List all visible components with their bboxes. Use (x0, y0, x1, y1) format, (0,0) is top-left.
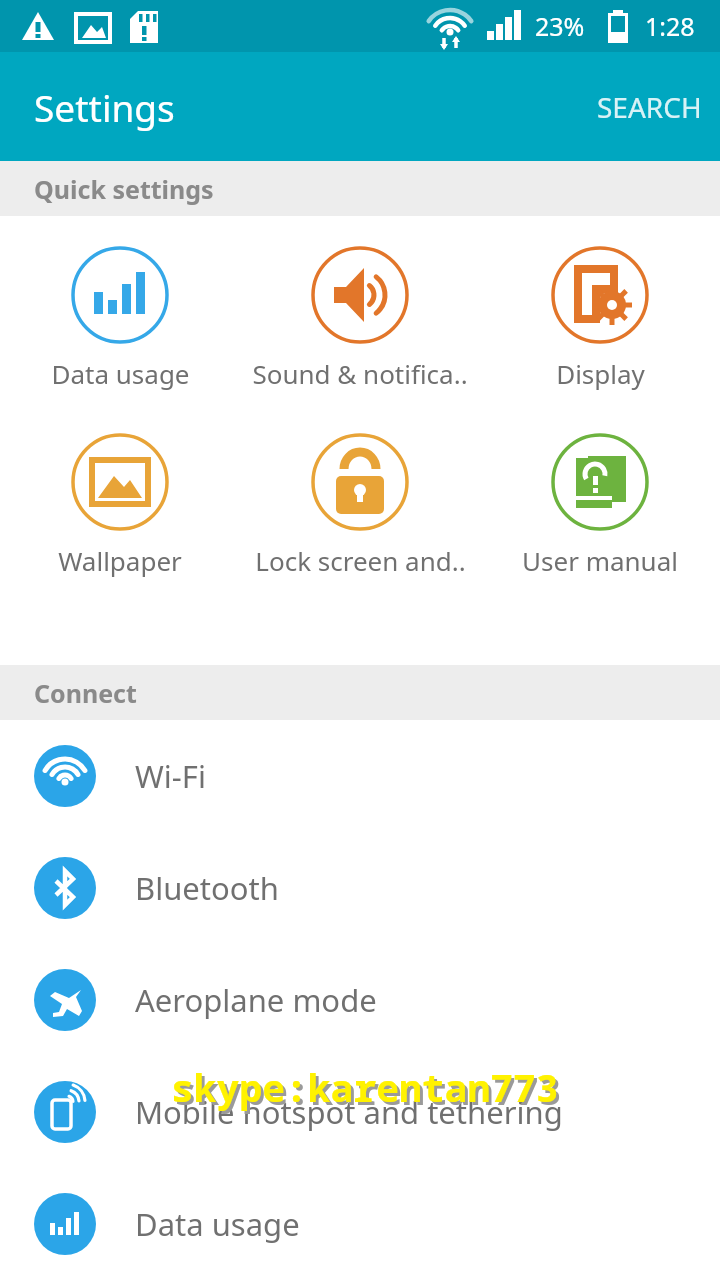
staticText: Display (556, 356, 645, 391)
other: Bluetooth (34, 857, 96, 919)
button[interactable]: Display (480, 246, 720, 391)
button[interactable]: Bluetooth (0, 832, 720, 944)
button[interactable]: Lock screen and.. (240, 433, 480, 578)
staticText: Data usage (135, 1203, 300, 1245)
button[interactable]: Wi-Fi (0, 720, 720, 832)
other: Mobile hotspot and tethering (34, 1081, 96, 1143)
button[interactable]: Aeroplane mode (0, 944, 720, 1056)
staticText: SEARCH (597, 88, 702, 126)
button[interactable]: Sound & notifica.. (240, 246, 480, 391)
staticText: 23% (535, 9, 585, 43)
staticText: Settings (34, 82, 175, 132)
other: Data usage (34, 1193, 96, 1255)
staticText: skype:karentan773 (171, 1061, 559, 1113)
other: Wi-Fi (34, 745, 96, 807)
staticText: Quick settings (34, 172, 214, 206)
staticText: Aeroplane mode (135, 979, 377, 1021)
button[interactable]: SEARCH (579, 68, 720, 146)
button[interactable]: User manual (480, 433, 720, 578)
staticText: Sound & notifica.. (252, 356, 468, 391)
button[interactable]: Data usage (0, 1168, 720, 1280)
staticText: Wallpaper (58, 543, 182, 578)
staticText: Wi-Fi (135, 755, 206, 797)
button[interactable]: Wallpaper (0, 433, 240, 578)
staticText: Data usage (51, 356, 190, 391)
button[interactable]: Data usage (0, 246, 240, 391)
staticText: 1:28 (645, 9, 695, 43)
staticText: Lock screen and.. (255, 543, 466, 578)
staticText: Mobile hotspot and tethering (135, 1091, 563, 1133)
staticText: Bluetooth (135, 867, 279, 909)
other: Aeroplane mode (34, 969, 96, 1031)
button[interactable]: Mobile hotspot and tethering (0, 1056, 720, 1168)
staticText: User manual (522, 543, 678, 578)
staticText: Connect (34, 676, 137, 710)
staticText: skype:karentan773 (174, 1064, 562, 1116)
